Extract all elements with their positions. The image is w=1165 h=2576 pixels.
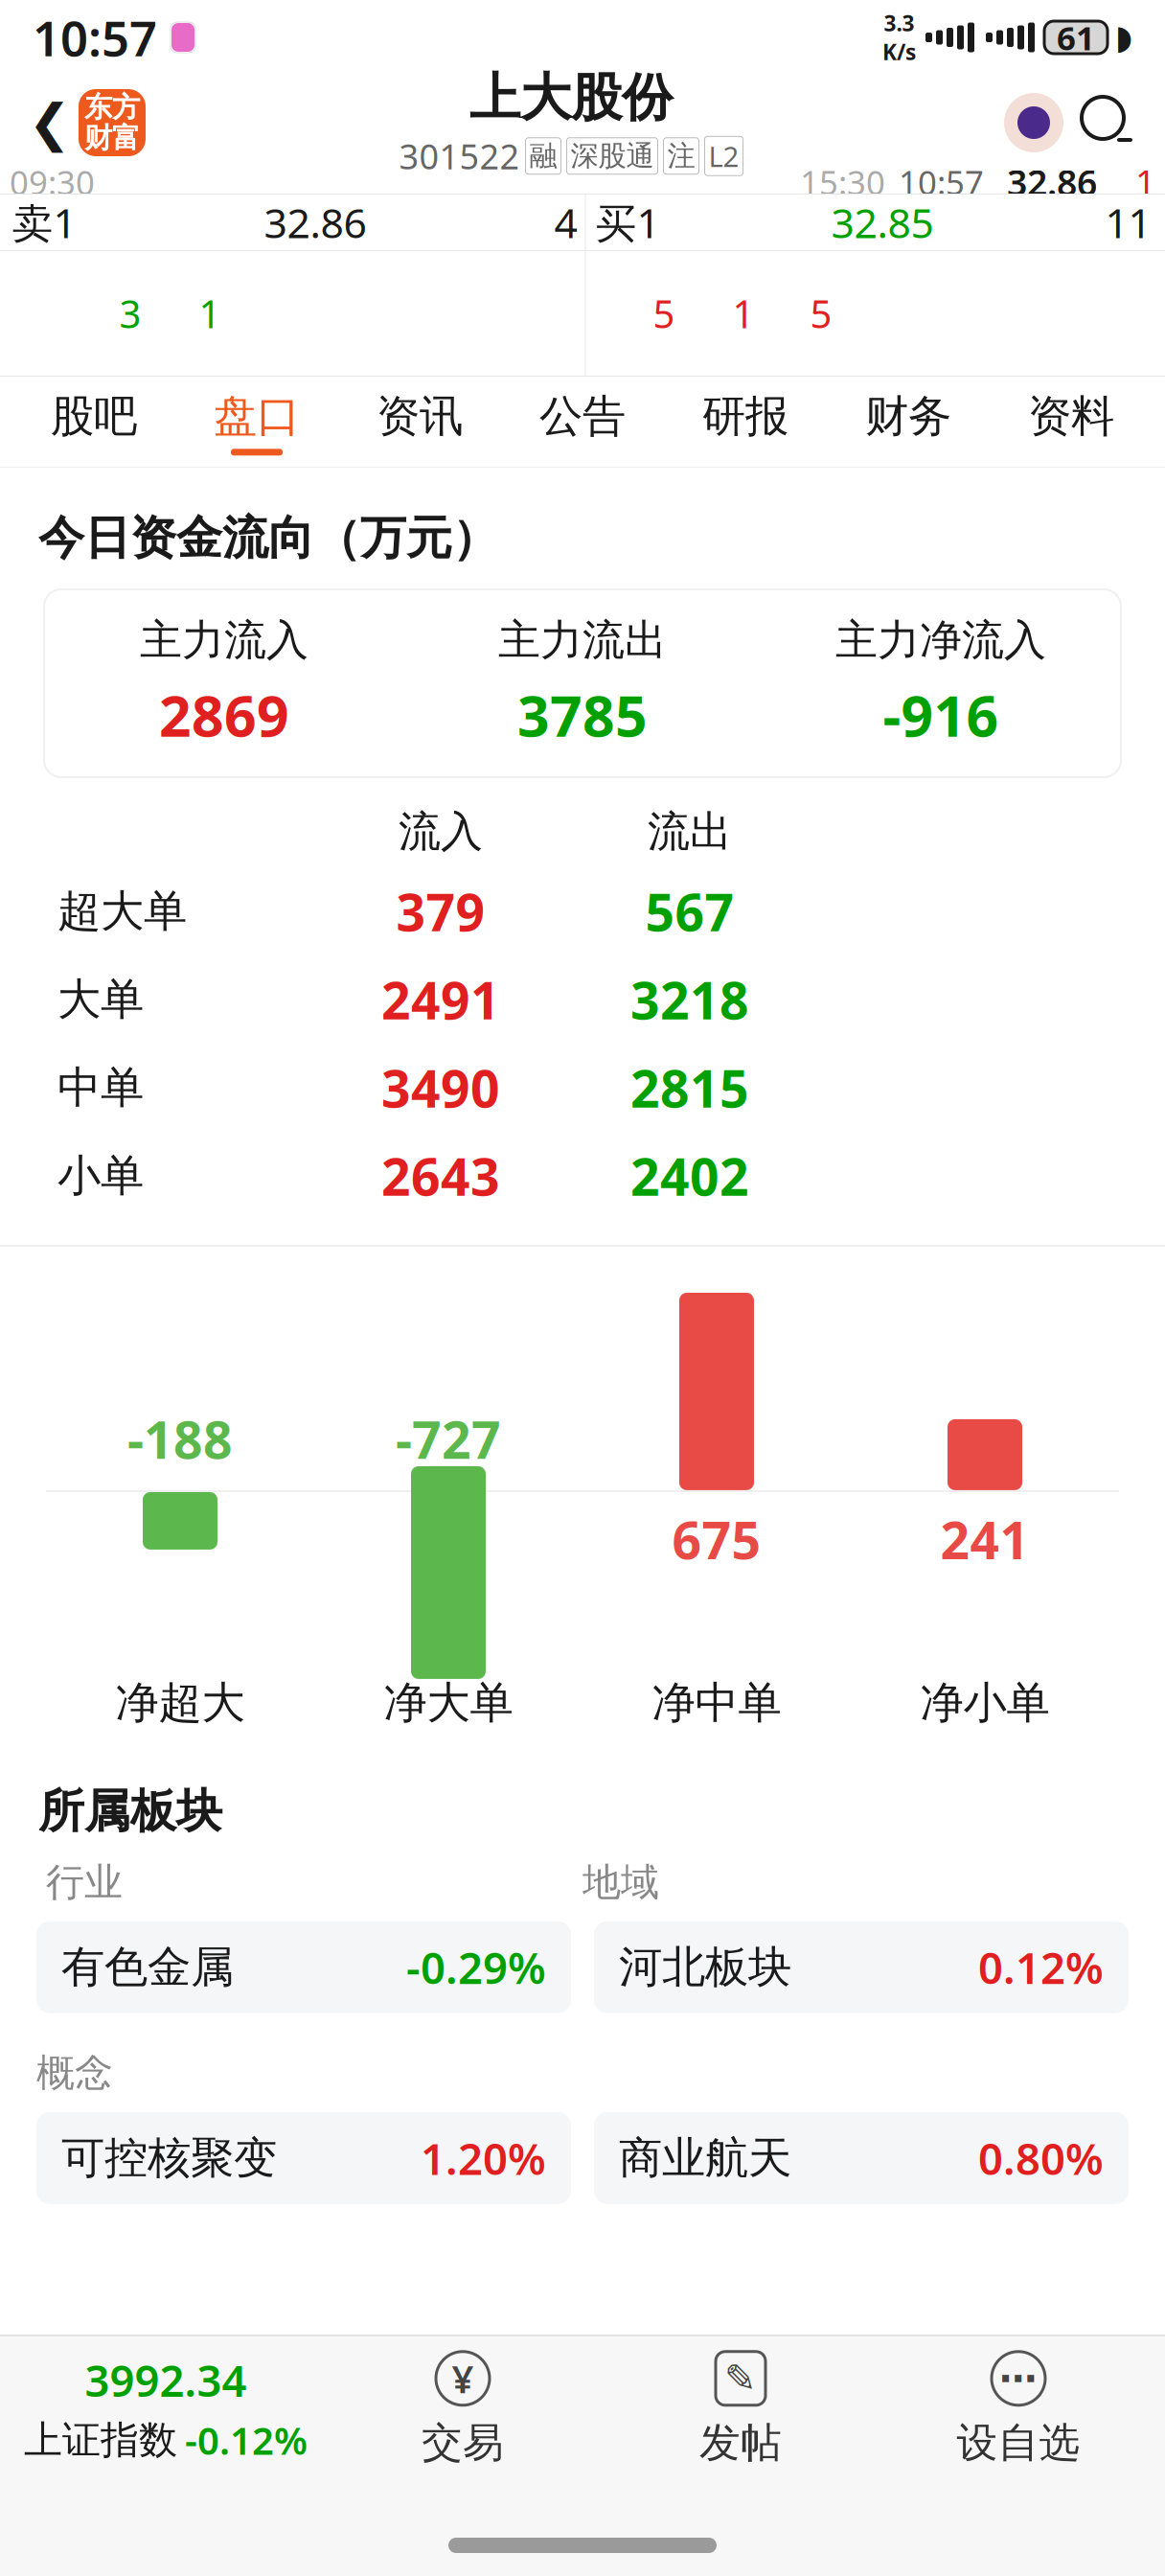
staticText: 深股通	[571, 139, 654, 173]
button[interactable]: 商业航天	[594, 2112, 1129, 2204]
staticText: 10:57	[33, 5, 157, 70]
button[interactable]: AI 助手	[996, 80, 1071, 166]
button[interactable]: 资料	[990, 377, 1153, 467]
staticText: 09:30	[10, 160, 95, 204]
staticText: 0.12%	[978, 1938, 1104, 1996]
staticText: 32.85	[831, 195, 934, 250]
staticText: 241	[940, 1385, 1029, 1453]
staticText: 主力流入	[140, 614, 308, 666]
staticText: 上证指数	[24, 2416, 177, 2463]
button[interactable]: ⋯	[879, 2336, 1157, 2480]
staticText: 净中单	[652, 1676, 781, 1730]
button[interactable]: 公告	[501, 377, 664, 467]
staticText: 注	[667, 139, 695, 173]
staticText: 财务	[865, 390, 951, 443]
staticText: 5	[810, 288, 832, 339]
staticText: 1	[199, 288, 221, 339]
staticText: 主力流出	[498, 614, 667, 666]
staticText: 1.20%	[421, 2129, 546, 2187]
staticText: 所属板块	[38, 1783, 222, 1840]
staticText: -188	[127, 1405, 233, 1473]
staticText: 交易	[422, 2418, 504, 2468]
staticText: 有色金属	[61, 1941, 234, 1994]
staticText: 资讯	[377, 390, 463, 443]
staticText: 净大单	[384, 1676, 513, 1730]
staticText: 2643	[381, 1142, 500, 1210]
staticText: K/s	[882, 37, 916, 66]
staticText: 3490	[381, 1054, 500, 1122]
button[interactable]: 可控核聚变	[36, 2112, 571, 2204]
button[interactable]: Back	[21, 80, 79, 166]
button[interactable]: 有色金属	[36, 1921, 571, 2013]
staticText: 10:57	[899, 160, 984, 204]
staticText: 32.86	[1007, 158, 1097, 206]
staticText: ✎	[724, 2357, 757, 2400]
staticText: 3	[119, 288, 141, 339]
staticText: ⋯	[999, 2357, 1038, 2400]
staticText: 盘口	[214, 390, 300, 443]
staticText: 5	[653, 288, 675, 339]
staticText: 3785	[517, 678, 648, 752]
staticText: 河北板块	[619, 1941, 791, 1994]
button[interactable]: 3992.34	[8, 2336, 324, 2480]
staticText: -0.29%	[406, 1938, 546, 1996]
staticText: 1	[732, 288, 754, 339]
staticText: 675	[672, 1259, 761, 1327]
staticText: 小单	[57, 1149, 144, 1203]
button[interactable]: Search	[1071, 80, 1144, 166]
staticText: -0.12%	[185, 2415, 308, 2465]
staticText: 股吧	[51, 390, 137, 443]
button[interactable]: 资讯	[338, 377, 501, 467]
staticText: 资料	[1028, 390, 1114, 443]
staticText: 2402	[630, 1142, 749, 1210]
staticText: 3.3	[884, 9, 914, 37]
staticText: 32.86	[264, 195, 366, 250]
staticText: 财富	[84, 121, 140, 155]
staticText: 3992.34	[85, 2351, 247, 2409]
button[interactable]: 河北板块	[594, 1921, 1129, 2013]
button[interactable]: ✎	[602, 2336, 879, 2480]
staticText: ❮	[28, 94, 71, 152]
button[interactable]: ¥	[324, 2336, 602, 2480]
staticText: -727	[396, 1405, 501, 1473]
staticText: ◗	[1115, 18, 1132, 56]
staticText: 上大股份	[469, 66, 673, 129]
staticText: 301522	[399, 133, 520, 179]
staticText: 公告	[539, 390, 626, 443]
staticText: 4	[554, 195, 577, 250]
staticText: 行业	[46, 1859, 123, 1906]
staticText: 地域	[582, 1859, 659, 1906]
staticText: 11	[1105, 195, 1151, 250]
staticText: 卖1	[12, 195, 76, 250]
staticText: -916	[883, 678, 999, 752]
staticText: 净小单	[920, 1676, 1050, 1730]
button[interactable]: 股吧	[12, 377, 175, 467]
staticText: 东方	[84, 90, 140, 125]
staticText: 流出	[648, 806, 732, 858]
button[interactable]: 盘口	[175, 377, 338, 467]
staticText: 超大单	[57, 885, 187, 938]
staticText: 2491	[381, 966, 500, 1033]
staticText: 买1	[595, 195, 660, 250]
staticText: 0.80%	[978, 2129, 1104, 2187]
button[interactable]: 东方财富	[79, 89, 146, 156]
button[interactable]: 财务	[827, 377, 990, 467]
staticText: 融	[529, 139, 557, 173]
button[interactable]: 研报	[664, 377, 827, 467]
staticText: 发帖	[699, 2418, 782, 2468]
staticText: 2869	[159, 678, 289, 752]
staticText: 61	[1057, 15, 1095, 59]
staticText: 商业航天	[619, 2131, 791, 2185]
staticText: 3218	[630, 966, 749, 1033]
staticText: 1	[1135, 158, 1155, 206]
staticText: 设自选	[957, 2418, 1080, 2468]
staticText: 675	[672, 1506, 761, 1573]
staticText: 241	[940, 1506, 1029, 1573]
staticText: 15:30	[800, 160, 885, 204]
staticText: 379	[396, 877, 485, 945]
staticText: 主力净流入	[835, 614, 1046, 666]
staticText: 流入	[399, 806, 483, 858]
staticText: L2	[708, 137, 739, 175]
staticText: 2815	[630, 1054, 749, 1122]
staticText: 研报	[702, 390, 788, 443]
